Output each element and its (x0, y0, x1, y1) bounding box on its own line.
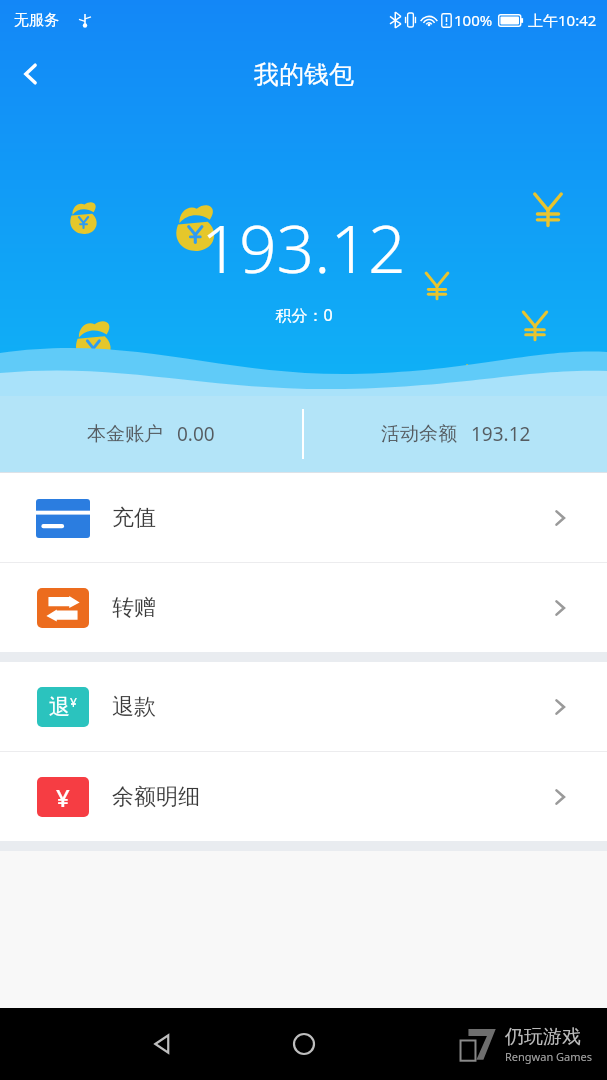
button[interactable]: 转赠 (0, 563, 607, 652)
staticText: 本金账户 (87, 422, 163, 446)
staticText: 余额明细 (112, 783, 200, 811)
staticText: 上午10:42 (528, 10, 597, 30)
staticText: ¥ (70, 694, 77, 710)
staticText: 积分：0 (275, 304, 333, 326)
button[interactable]: Back (0, 43, 62, 105)
staticText: 转赠 (112, 594, 156, 622)
button[interactable]: Back (138, 1020, 186, 1068)
button[interactable]: 充值 (0, 473, 607, 562)
button[interactable]: ¥ (0, 752, 607, 841)
staticText: 退款 (112, 693, 156, 721)
staticText: 0.00 (177, 421, 215, 447)
staticText: 193.12 (471, 421, 531, 447)
staticText: ¥ (56, 781, 70, 814)
staticText: 无服务 (14, 11, 59, 30)
staticText: 100% (454, 10, 493, 30)
staticText: 193.12 (201, 202, 406, 292)
staticText: 充值 (112, 504, 156, 532)
button[interactable]: 退 (0, 662, 607, 751)
staticText: 活动余额 (381, 422, 457, 446)
button[interactable]: 本金账户 (0, 396, 302, 472)
staticText: 退 (49, 694, 70, 720)
button[interactable]: Home (280, 1020, 328, 1068)
button[interactable]: 活动余额 (304, 396, 607, 472)
staticText: 仍玩游戏 (505, 1025, 581, 1049)
staticText: Rengwan Games (505, 1049, 593, 1064)
staticText: 我的钱包 (254, 59, 354, 90)
